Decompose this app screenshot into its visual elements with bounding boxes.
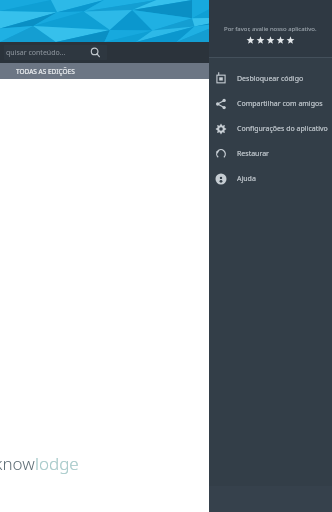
button[interactable]: Restaurar (209, 141, 332, 166)
button[interactable]: Menu (311, 45, 327, 61)
staticText: quisar conteúdo... (6, 48, 66, 58)
button[interactable]: quisar conteúdo... (4, 45, 107, 60)
staticText: Desbloquear código (237, 74, 304, 84)
staticText: lodge (35, 452, 79, 475)
staticText: TODAS AS EDIÇÕES (16, 67, 75, 76)
button[interactable]: TODAS AS EDIÇÕES (0, 63, 332, 79)
button[interactable]: Ajuda (209, 166, 332, 191)
staticText: Configurações do aplicativo (237, 124, 328, 134)
other: Search (90, 47, 101, 58)
staticText: Por favor, avalie nosso aplicativo. (224, 25, 317, 33)
staticText: Restaurar (237, 149, 270, 159)
button[interactable]: Desbloquear código (209, 66, 332, 91)
staticText: Compartilhar com amigos (237, 99, 323, 109)
button[interactable]: Configurações do aplicativo (209, 116, 332, 141)
staticText: know (0, 452, 35, 475)
staticText: Ajuda (237, 174, 256, 184)
button[interactable]: Por favor, avalie nosso aplicativo. (209, 0, 332, 57)
button[interactable]: Compartilhar com amigos (209, 91, 332, 116)
